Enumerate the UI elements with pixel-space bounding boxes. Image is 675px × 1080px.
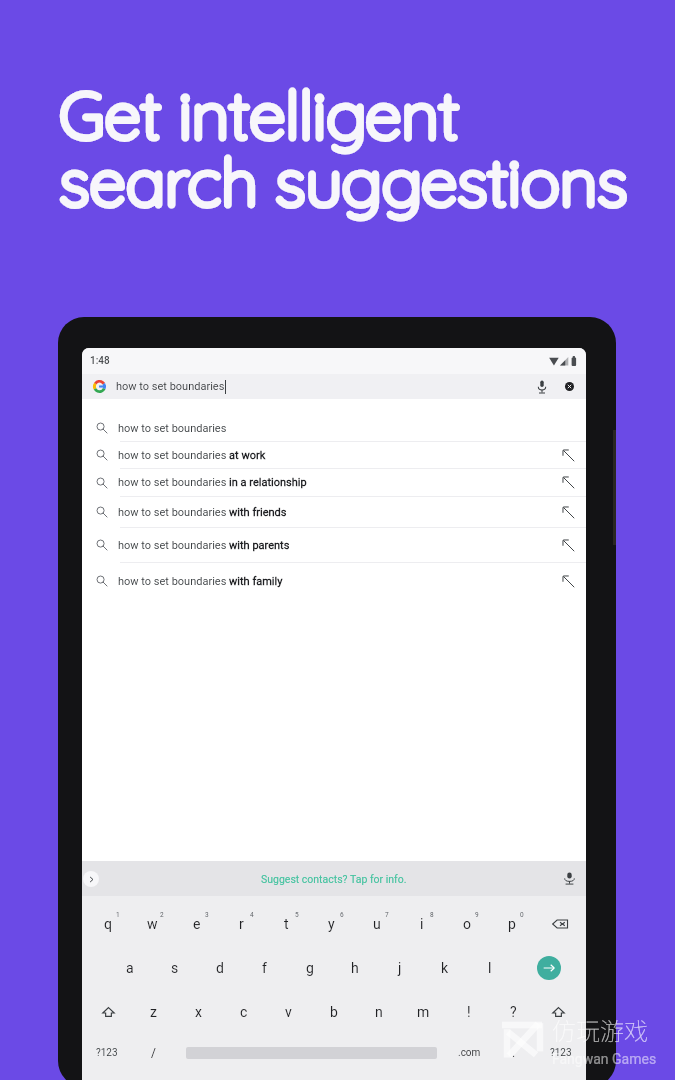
button[interactable]: how to set boundaries with family [82, 563, 586, 599]
staticText: p [508, 916, 516, 932]
staticText: s [171, 960, 179, 976]
button[interactable]: v [266, 990, 311, 1034]
staticText: z [150, 1004, 157, 1020]
staticText: .com [458, 1047, 481, 1059]
staticText: 4 [250, 911, 254, 919]
staticText: how to set boundaries [116, 380, 225, 393]
staticText: n [375, 1004, 383, 1020]
staticText: Get intelligent search suggestions [59, 73, 628, 222]
button[interactable]: Expand suggestions [83, 871, 99, 887]
button[interactable]: .com [448, 1031, 491, 1075]
staticText: w [147, 916, 158, 932]
button[interactable]: c [221, 990, 266, 1034]
staticText: m [417, 1004, 430, 1020]
button[interactable]: j [377, 946, 422, 990]
other: Search [542, 961, 556, 975]
button[interactable]: w [130, 902, 174, 946]
other: Insert suggestion [562, 449, 575, 462]
button[interactable]: r [219, 902, 264, 946]
staticText: ! [467, 1004, 471, 1020]
button[interactable]: . [491, 1031, 536, 1075]
staticText: f [262, 960, 267, 976]
button[interactable]: Shift [536, 990, 581, 1034]
staticText: . [512, 1046, 516, 1060]
button[interactable]: ? [491, 990, 536, 1034]
staticText: how to set boundaries with family [118, 575, 283, 588]
button[interactable]: how to set boundaries at work [82, 442, 586, 468]
button[interactable]: y [309, 902, 354, 946]
staticText: Fangwan Games [552, 1051, 657, 1067]
button[interactable]: k [422, 946, 467, 990]
staticText: ? [510, 1004, 517, 1020]
button[interactable]: s [152, 946, 197, 990]
other: Clear [565, 382, 574, 391]
staticText: o [463, 916, 471, 932]
staticText: b [330, 1004, 338, 1020]
button[interactable]: how to set boundaries [82, 374, 586, 399]
button[interactable]: how to set boundaries [82, 415, 586, 441]
button[interactable]: a [107, 946, 152, 990]
button[interactable]: f [242, 946, 287, 990]
staticText: how to set boundaries at work [118, 449, 266, 462]
button[interactable]: ?123 [82, 1031, 131, 1075]
button[interactable]: u [354, 902, 399, 946]
button[interactable]: q [86, 902, 130, 946]
staticText: how to set boundaries with friends [118, 506, 287, 519]
button[interactable]: ?123 [536, 1031, 586, 1075]
staticText: 1:48 [90, 355, 110, 367]
other: Shift [102, 1006, 115, 1019]
staticText: y [328, 916, 335, 932]
staticText: Suggest contacts? Tap for info. [261, 873, 407, 885]
staticText: h [351, 960, 359, 976]
other: Expand suggestions [87, 875, 96, 884]
button[interactable]: Backspace [534, 902, 586, 946]
other: Insert suggestion [562, 476, 575, 489]
other: Backspace [552, 916, 568, 932]
staticText: 6 [340, 911, 344, 919]
button[interactable]: how to set boundaries in a relationship [82, 469, 586, 496]
button[interactable]: Search [512, 946, 586, 990]
staticText: 5 [295, 911, 299, 919]
button[interactable]: m [401, 990, 446, 1034]
button[interactable]: e [174, 902, 219, 946]
button[interactable] [175, 1031, 448, 1075]
staticText: how to set boundaries with parents [118, 539, 290, 552]
button[interactable]: b [311, 990, 356, 1034]
staticText: 8 [430, 911, 434, 919]
staticText: / [151, 1046, 156, 1060]
button[interactable]: z [131, 990, 176, 1034]
staticText: e [193, 916, 201, 932]
button[interactable]: how to set boundaries with parents [82, 528, 586, 562]
staticText: i [420, 916, 424, 932]
button[interactable]: n [356, 990, 401, 1034]
button[interactable]: l [467, 946, 512, 990]
button[interactable]: o [444, 902, 489, 946]
button[interactable]: d [197, 946, 242, 990]
other: Shift [552, 1006, 565, 1019]
button[interactable]: / [131, 1031, 175, 1075]
other: Insert suggestion [562, 575, 575, 588]
staticText: r [239, 916, 244, 932]
button[interactable]: i [399, 902, 444, 946]
staticText: ?123 [550, 1047, 572, 1059]
button[interactable]: x [176, 990, 221, 1034]
staticText: 仿玩游戏 [552, 1012, 648, 1047]
button[interactable]: Shift [86, 990, 131, 1034]
button[interactable]: g [287, 946, 332, 990]
staticText: l [488, 960, 492, 976]
button[interactable]: Expand suggestions [82, 861, 586, 896]
button[interactable]: ! [446, 990, 491, 1034]
staticText: v [285, 1004, 292, 1020]
button[interactable]: how to set boundaries with friends [82, 497, 586, 527]
staticText: q [104, 916, 112, 932]
button[interactable]: h [332, 946, 377, 990]
button[interactable]: p [489, 902, 534, 946]
staticText: k [441, 960, 449, 976]
staticText: c [240, 1004, 248, 1020]
other: Insert suggestion [562, 506, 575, 519]
staticText: how to set boundaries [118, 422, 227, 435]
staticText: d [216, 960, 224, 976]
staticText: x [195, 1004, 202, 1020]
button[interactable]: t [264, 902, 309, 946]
staticText: 2 [160, 911, 164, 919]
